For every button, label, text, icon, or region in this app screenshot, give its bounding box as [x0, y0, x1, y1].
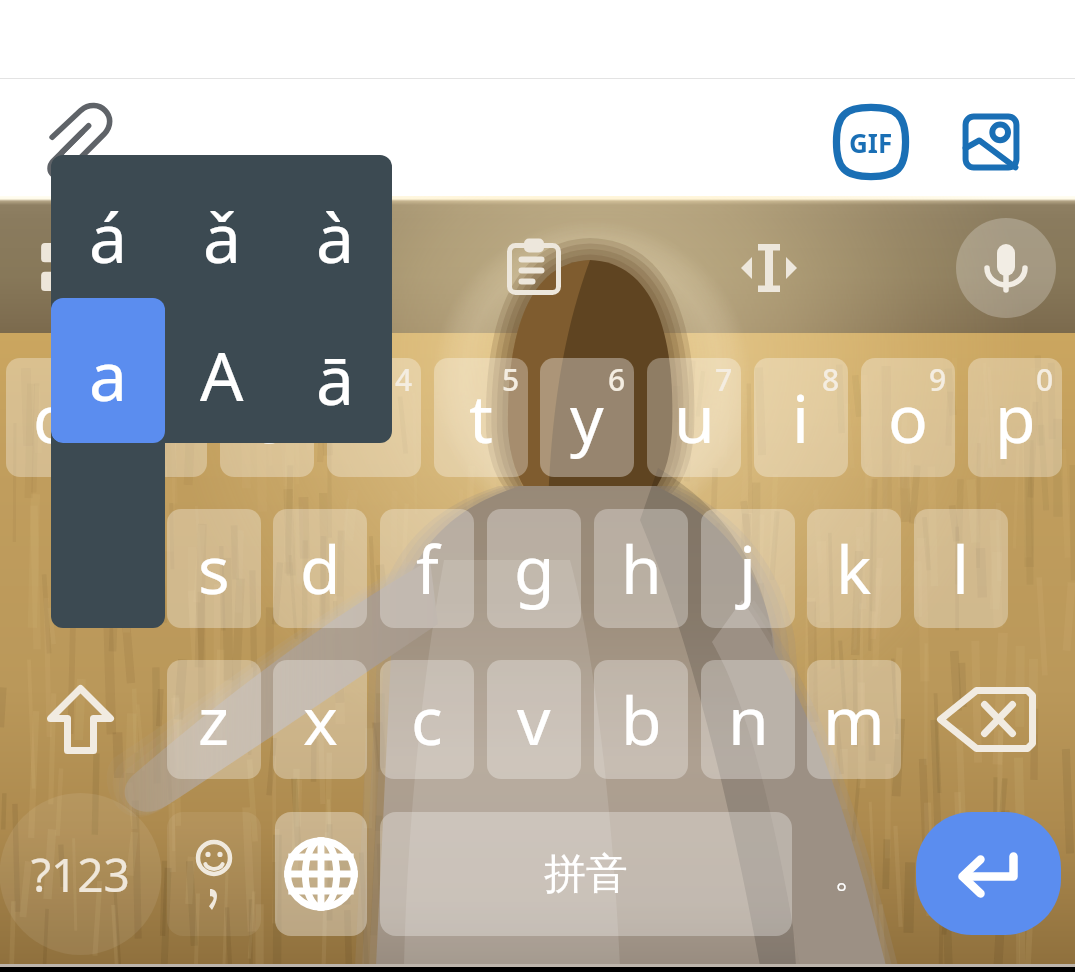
staticText: r: [360, 372, 388, 462]
staticText: w: [134, 372, 186, 462]
button[interactable]: Shift: [7, 660, 154, 779]
staticText: j: [739, 523, 757, 613]
staticText: u: [674, 372, 715, 462]
button[interactable]: Clipboard: [486, 218, 582, 314]
staticText: à: [316, 190, 355, 283]
staticText: t: [469, 372, 493, 462]
staticText: 9: [929, 359, 947, 400]
staticText: GIF: [849, 125, 893, 160]
staticText: i: [792, 372, 810, 462]
staticText: a: [89, 328, 128, 421]
staticText: s: [198, 523, 230, 613]
button[interactable]: Enter: [916, 812, 1061, 935]
staticText: x: [303, 674, 338, 764]
button[interactable]: Image: [943, 94, 1039, 190]
button[interactable]: ā: [278, 298, 392, 443]
button[interactable]: h: [594, 509, 688, 628]
staticText: 0: [1036, 359, 1054, 400]
staticText: k: [836, 523, 872, 613]
staticText: ǎ: [203, 190, 242, 283]
staticText: v: [517, 674, 551, 764]
button[interactable]: s: [167, 509, 261, 628]
staticText: ?123: [31, 843, 130, 906]
button[interactable]: o: [861, 358, 955, 477]
button[interactable]: a: [51, 298, 165, 443]
staticText: ā: [316, 332, 355, 425]
button[interactable]: v: [487, 660, 581, 779]
staticText: 。: [834, 852, 870, 897]
staticText: g: [514, 523, 555, 613]
staticText: 4: [395, 359, 413, 400]
button[interactable]: k: [807, 509, 901, 628]
staticText: e: [248, 372, 286, 462]
staticText: 7: [715, 359, 733, 400]
button[interactable]: z: [167, 660, 261, 779]
staticText: n: [728, 674, 769, 764]
staticText: A: [200, 328, 244, 421]
button[interactable]: u: [647, 358, 741, 477]
button[interactable]: p: [968, 358, 1062, 477]
button[interactable]: GIF: [823, 94, 919, 190]
button[interactable]: n: [701, 660, 795, 779]
button[interactable]: x: [273, 660, 367, 779]
button[interactable]: l: [914, 509, 1008, 628]
button[interactable]: d: [273, 509, 367, 628]
button[interactable]: Change language: [275, 812, 367, 936]
button[interactable]: 。: [805, 812, 899, 936]
button[interactable]: e: [220, 358, 314, 477]
staticText: d: [300, 523, 341, 613]
button[interactable]: y: [540, 358, 634, 477]
button[interactable]: i: [754, 358, 848, 477]
staticText: h: [621, 523, 662, 613]
button[interactable]: Backspace: [913, 660, 1060, 779]
staticText: p: [995, 372, 1036, 462]
button[interactable]: r: [327, 358, 421, 477]
button[interactable]: Menu: [20, 220, 116, 316]
button[interactable]: f: [380, 509, 474, 628]
button[interactable]: g: [487, 509, 581, 628]
staticText: f: [416, 523, 439, 613]
button[interactable]: q: [6, 358, 100, 477]
staticText: z: [198, 674, 230, 764]
button[interactable]: m: [807, 660, 901, 779]
button[interactable]: b: [594, 660, 688, 779]
staticText: 6: [608, 359, 626, 400]
staticText: b: [621, 674, 662, 764]
staticText: o: [888, 372, 928, 462]
staticText: l: [952, 523, 970, 613]
staticText: c: [411, 674, 443, 764]
staticText: q: [33, 372, 74, 462]
button[interactable]: Text editing: [721, 220, 817, 316]
button[interactable]: Emoji and comma: [167, 812, 261, 936]
button[interactable]: A: [165, 298, 279, 443]
button[interactable]: w: [113, 358, 207, 477]
button[interactable]: Attach: [31, 94, 127, 190]
staticText: m: [823, 674, 885, 764]
button[interactable]: 拼音: [380, 812, 792, 936]
staticText: á: [89, 190, 128, 283]
staticText: y: [570, 372, 604, 462]
button[interactable]: t: [434, 358, 528, 477]
button[interactable]: Voice input: [956, 218, 1056, 318]
staticText: 8: [822, 359, 840, 400]
button[interactable]: c: [380, 660, 474, 779]
button[interactable]: ?123: [7, 812, 154, 936]
staticText: 拼音: [544, 848, 628, 901]
button[interactable]: j: [701, 509, 795, 628]
staticText: 5: [502, 359, 520, 400]
